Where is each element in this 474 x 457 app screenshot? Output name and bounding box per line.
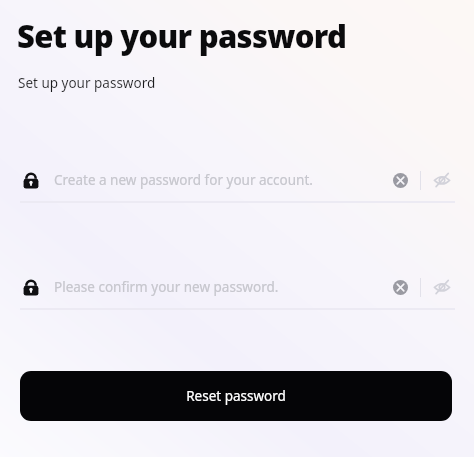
button[interactable]: Clear bbox=[387, 274, 413, 300]
button[interactable]: Show password bbox=[429, 167, 455, 193]
staticText: Please confirm your new password. bbox=[54, 278, 387, 296]
button[interactable]: Password bbox=[20, 158, 455, 202]
staticText: Reset password bbox=[186, 387, 286, 405]
other: Password bbox=[20, 169, 42, 191]
button[interactable]: Reset password bbox=[20, 371, 452, 421]
button[interactable]: Show password bbox=[429, 274, 455, 300]
staticText: Create a new password for your account. bbox=[54, 171, 387, 189]
button[interactable]: Password bbox=[20, 265, 455, 309]
staticText: Set up your password bbox=[18, 74, 156, 92]
button[interactable]: Clear bbox=[387, 167, 413, 193]
other: Password bbox=[20, 276, 42, 298]
staticText: Set up your password bbox=[17, 15, 347, 57]
